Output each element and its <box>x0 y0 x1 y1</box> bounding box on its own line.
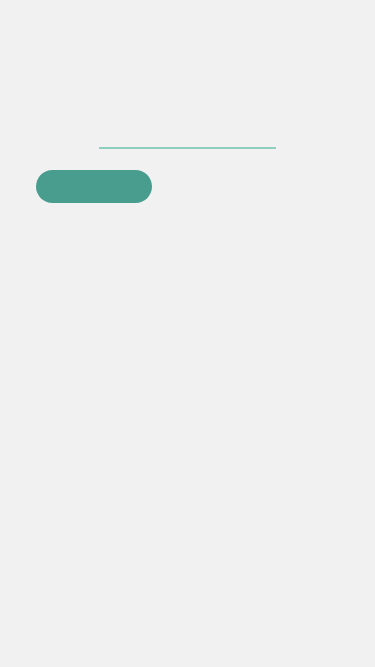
button[interactable]: Primary action <box>36 170 152 203</box>
